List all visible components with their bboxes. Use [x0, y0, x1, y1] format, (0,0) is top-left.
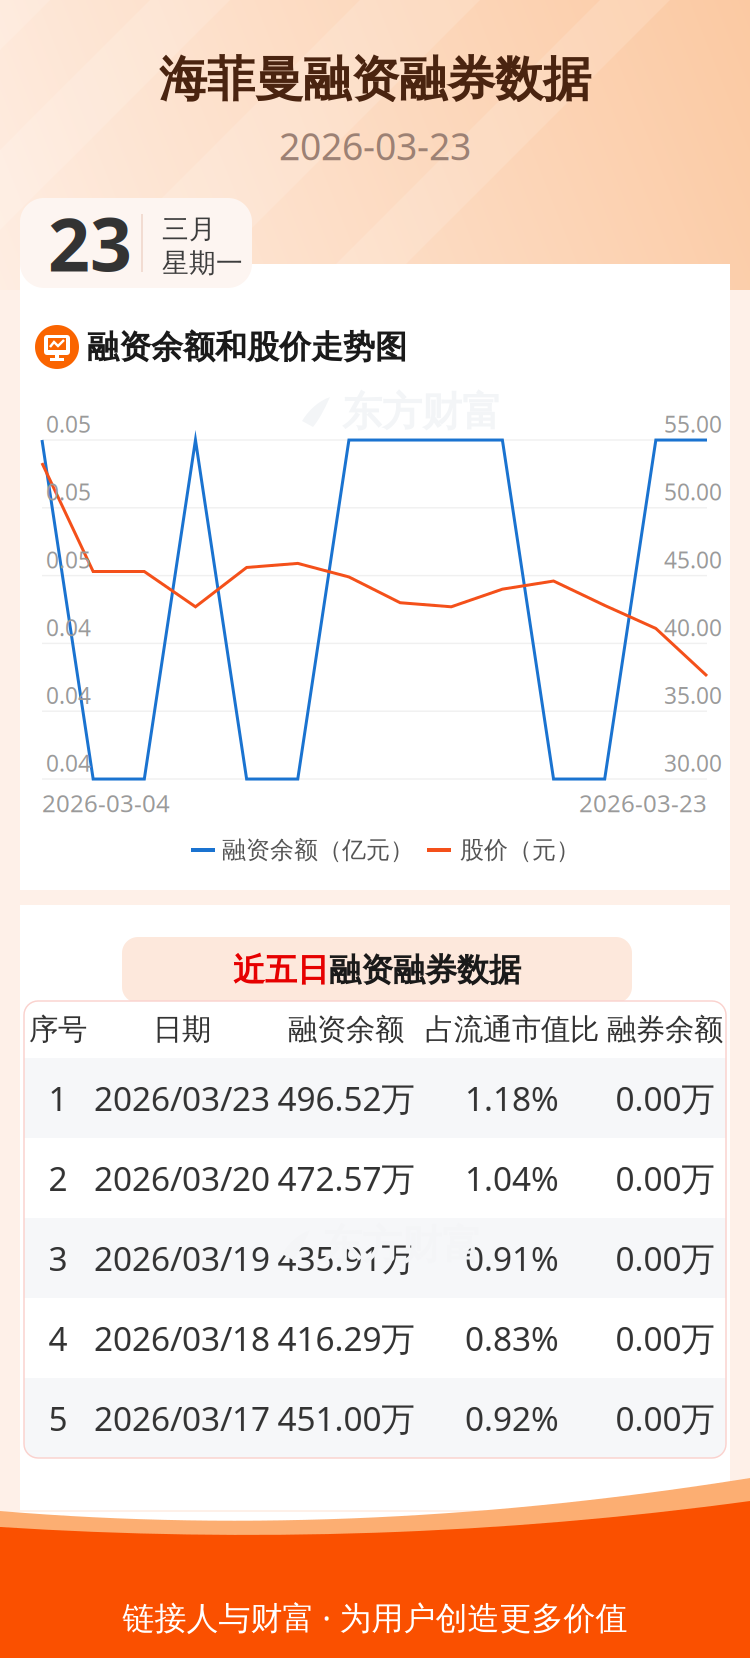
staticText: 23: [48, 194, 132, 292]
staticText: 4: [48, 1316, 67, 1360]
staticText: 0.91%: [465, 1236, 559, 1280]
staticText: 日期: [153, 1011, 211, 1047]
staticText: 2: [48, 1156, 67, 1200]
staticText: 融资融券数据: [329, 950, 521, 990]
staticText: 55.00: [664, 409, 722, 439]
staticText: 2026/03/18: [94, 1316, 270, 1360]
staticText: 3: [48, 1236, 67, 1280]
staticText: 0.05: [46, 409, 91, 439]
staticText: 2026/03/20: [94, 1156, 270, 1200]
staticText: 链接人与财富 · 为用户创造更多价值: [122, 1596, 627, 1638]
staticText: 股价（元）: [460, 835, 580, 865]
staticText: 0.00万: [615, 1076, 714, 1120]
staticText: 0.05: [46, 544, 91, 575]
staticText: 占流通市值比: [425, 1011, 599, 1047]
staticText: 融券余额: [607, 1011, 723, 1047]
staticText: 0.00万: [615, 1236, 714, 1280]
staticText: 三月: [162, 213, 216, 245]
staticText: 0.92%: [465, 1396, 559, 1440]
staticText: 2026/03/17: [94, 1396, 270, 1440]
staticText: 近五日: [233, 950, 329, 990]
staticText: 496.52万: [277, 1076, 414, 1120]
staticText: 50.00: [664, 477, 722, 507]
staticText: 0.04: [46, 680, 91, 710]
staticText: 2026/03/23: [94, 1076, 270, 1120]
staticText: 435.91万: [277, 1236, 414, 1280]
staticText: 35.00: [664, 680, 722, 710]
staticText: 416.29万: [277, 1316, 414, 1360]
staticText: 2026-03-04: [42, 787, 170, 819]
staticText: 1.18%: [465, 1076, 559, 1120]
staticText: 472.57万: [277, 1156, 414, 1200]
staticText: 东方财富: [322, 1220, 482, 1269]
staticText: 序号: [29, 1011, 87, 1047]
staticText: 0.00万: [615, 1316, 714, 1360]
staticText: 海菲曼融资融券数据: [159, 50, 591, 109]
staticText: 1: [48, 1076, 67, 1120]
staticText: 45.00: [664, 544, 722, 575]
staticText: 1.04%: [465, 1156, 559, 1200]
staticText: 30.00: [664, 748, 722, 778]
staticText: 东方财富: [342, 387, 502, 436]
staticText: 2026/03/19: [94, 1236, 270, 1280]
staticText: 融资余额: [288, 1011, 404, 1047]
staticText: 融资余额（亿元）: [222, 835, 414, 865]
staticText: 0.00万: [615, 1156, 714, 1200]
staticText: 451.00万: [277, 1396, 414, 1440]
staticText: 0.04: [46, 612, 91, 642]
staticText: 融资余额和股价走势图: [87, 327, 407, 367]
staticText: 0.05: [46, 477, 91, 507]
staticText: 星期一: [162, 247, 243, 279]
staticText: 0.00万: [615, 1396, 714, 1440]
staticText: 40.00: [664, 612, 722, 642]
staticText: 0.83%: [465, 1316, 559, 1360]
staticText: 2026-03-23: [579, 787, 707, 819]
staticText: 0.04: [46, 748, 91, 778]
staticText: 5: [48, 1396, 67, 1440]
staticText: 2026-03-23: [279, 121, 471, 171]
